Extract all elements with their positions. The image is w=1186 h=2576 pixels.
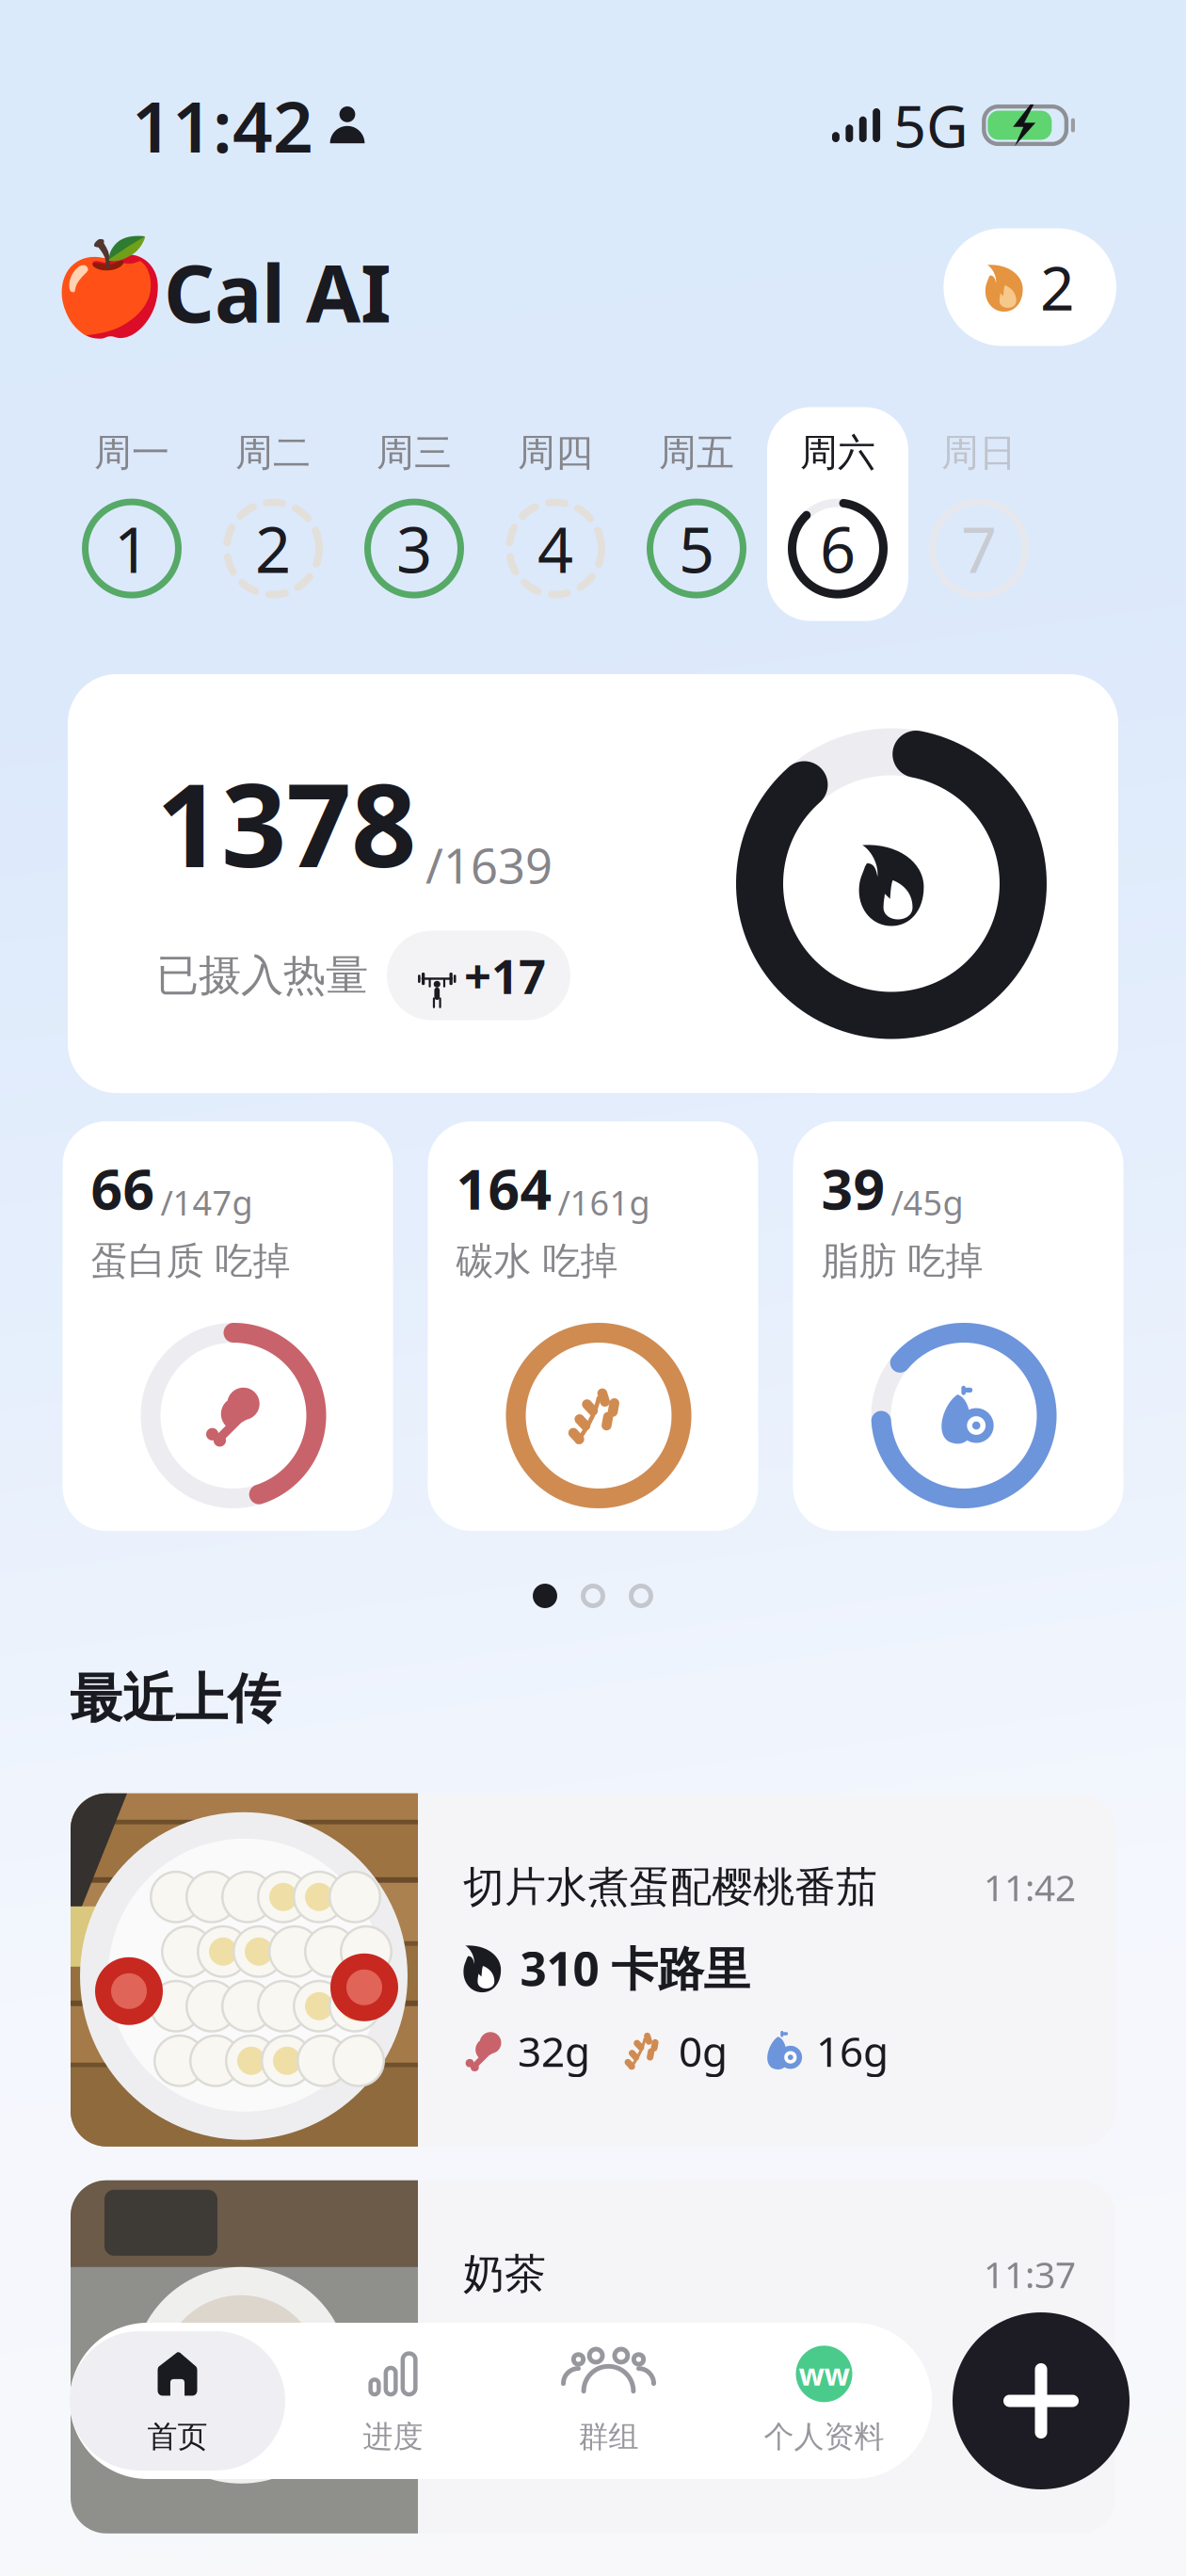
button[interactable]: 周四 <box>485 430 626 598</box>
staticText: 11:42 <box>984 1863 1076 1911</box>
staticText: 3 <box>396 507 432 590</box>
staticText: 周日 <box>941 430 1017 476</box>
staticText: /45g <box>891 1180 963 1225</box>
staticText: 214 卡路里 <box>520 2324 750 2386</box>
staticText: 11:37 <box>984 2250 1076 2298</box>
staticText: 周四 <box>518 430 593 476</box>
button[interactable]: 周二 <box>202 430 344 598</box>
button[interactable]: ww <box>716 2331 932 2471</box>
staticText: 7 <box>961 507 997 590</box>
staticText: 164 <box>456 1151 552 1225</box>
staticText: 群组 <box>578 2418 639 2455</box>
staticText: /147g <box>160 1180 253 1225</box>
button[interactable]: 首页 <box>70 2331 285 2471</box>
staticText: 66 <box>91 1151 155 1225</box>
button[interactable]: 周六 <box>767 407 908 621</box>
staticText: 32g <box>518 2023 590 2078</box>
staticText: 蛋白质 吃掉 <box>91 1238 290 1284</box>
button[interactable]: 切片水煮蛋配樱桃番茄 <box>71 1793 1115 2146</box>
staticText: 碳水 吃掉 <box>456 1238 618 1284</box>
button[interactable]: 进度 <box>285 2331 501 2471</box>
staticText: 周二 <box>235 430 311 476</box>
staticText: 2 <box>1040 247 1075 327</box>
staticText: 进度 <box>363 2418 423 2455</box>
staticText: 首页 <box>147 2418 208 2455</box>
button[interactable]: 周五 <box>626 430 767 598</box>
staticText: 最近上传 <box>70 1666 280 1731</box>
button[interactable]: 39 <box>793 1121 1123 1531</box>
button[interactable]: 周一 <box>61 430 202 598</box>
staticText: 脂肪 吃掉 <box>821 1238 983 1284</box>
button[interactable]: 66 <box>63 1121 393 1531</box>
staticText: 奶茶 <box>463 2249 546 2299</box>
staticText: 0g <box>679 2023 728 2078</box>
button[interactable]: 2 <box>944 228 1116 346</box>
button[interactable]: 周三 <box>344 430 485 598</box>
staticText: 6 <box>820 507 856 590</box>
staticText: 周六 <box>800 430 875 476</box>
staticText: 1 <box>114 507 150 590</box>
staticText: +17 <box>464 944 546 1007</box>
staticText: 个人资料 <box>764 2418 884 2455</box>
staticText: 周五 <box>659 430 734 476</box>
staticText: 39 <box>821 1151 885 1225</box>
staticText: 310 卡路里 <box>520 1937 750 1999</box>
button[interactable]: 164 <box>428 1121 758 1531</box>
staticText: 1378 <box>156 747 416 899</box>
staticText: ww <box>799 2354 849 2394</box>
button[interactable]: 周日 <box>908 430 1050 598</box>
staticText: /161g <box>558 1180 650 1225</box>
staticText: 5G <box>893 87 969 164</box>
button[interactable]: Add <box>953 2312 1130 2489</box>
staticText: 11:42 <box>132 79 313 172</box>
staticText: 周三 <box>377 430 452 476</box>
staticText: 5 <box>679 507 714 590</box>
staticText: 4 <box>537 507 573 590</box>
staticText: 周一 <box>94 430 169 476</box>
staticText: 切片水煮蛋配樱桃番茄 <box>463 1862 877 1913</box>
button[interactable]: 群组 <box>501 2331 716 2471</box>
button[interactable]: 奶茶 <box>71 2180 1115 2533</box>
staticText: Cal AI <box>164 239 392 344</box>
staticText: 4g <box>816 2410 865 2465</box>
staticText: 🍎 <box>51 234 167 340</box>
staticText: 2 <box>255 507 291 590</box>
staticText: 已摄入热量 <box>156 949 368 1002</box>
staticText: 16g <box>816 2023 889 2078</box>
staticText: /1639 <box>425 833 553 897</box>
